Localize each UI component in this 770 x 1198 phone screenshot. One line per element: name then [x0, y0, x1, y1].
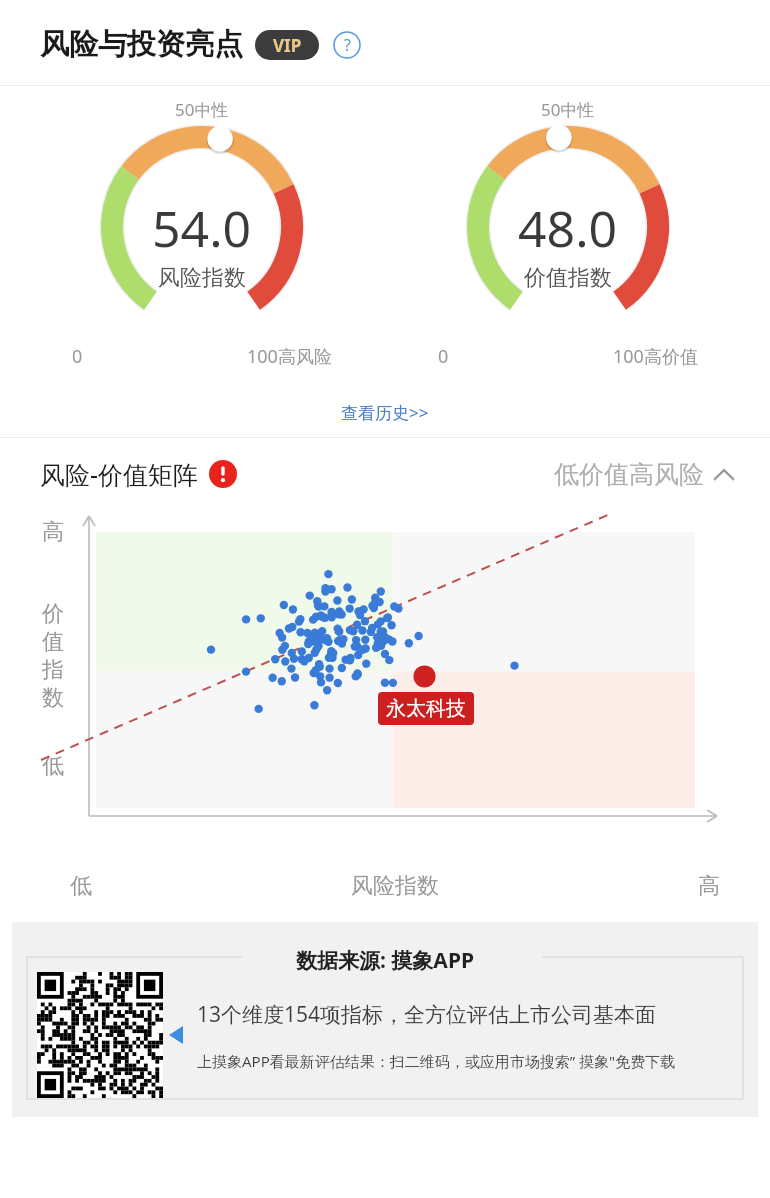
staticText: 50中性: [175, 98, 229, 121]
staticText: 风险-价值矩阵: [40, 457, 199, 491]
staticText: 风险指数: [351, 872, 439, 900]
staticText: 指: [42, 656, 64, 684]
staticText: 0: [72, 344, 83, 369]
staticText: ?: [344, 34, 351, 56]
staticText: 价值指数: [524, 264, 612, 292]
staticText: 13个维度154项指标，全方位评估上市公司基本面: [197, 1000, 657, 1029]
staticText: 100高风险: [247, 344, 332, 369]
staticText: 低: [42, 752, 64, 780]
staticText: 风险与投资亮点: [40, 26, 243, 63]
staticText: 永太科技: [386, 696, 466, 721]
button[interactable]: 永太科技: [378, 692, 474, 725]
staticText: 低价值高风险: [554, 459, 704, 490]
staticText: 50中性: [541, 98, 595, 121]
button[interactable]: 50中性: [403, 86, 733, 391]
staticText: 查看历史>>: [341, 401, 429, 424]
staticText: 100高价值: [613, 344, 698, 369]
other: 二维码: [37, 972, 163, 1098]
staticText: 上摸象APP看最新评估结果：扫二维码，或应用市场搜索” 摸象"免费下载: [197, 1051, 676, 1071]
staticText: 54.0: [152, 194, 252, 262]
button[interactable]: VIP: [255, 30, 319, 60]
staticText: 风险指数: [158, 264, 246, 292]
staticText: 48.0: [518, 194, 618, 262]
button[interactable]: 提示: [209, 460, 237, 488]
staticText: 数: [42, 684, 64, 712]
staticText: 价: [42, 600, 64, 628]
button[interactable]: 查看历史>>: [0, 391, 770, 433]
staticText: 0: [438, 344, 449, 369]
staticText: 高: [42, 518, 64, 546]
staticText: 低: [70, 872, 92, 900]
button[interactable]: 低价值高风险: [554, 459, 734, 490]
staticText: 值: [42, 628, 64, 656]
staticText: 数据来源: 摸象APP: [296, 946, 474, 975]
button[interactable]: 50中性: [37, 86, 367, 391]
button[interactable]: 二维码: [12, 922, 758, 1117]
staticText: 高: [698, 872, 720, 900]
staticText: VIP: [273, 34, 302, 57]
button[interactable]: 帮助: [333, 31, 361, 59]
